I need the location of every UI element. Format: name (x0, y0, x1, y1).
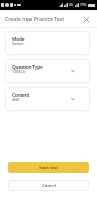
staticText: Start test (39, 164, 58, 170)
staticText: 100 MCQs (12, 69, 25, 74)
staticText: Create new Practice Test (5, 15, 65, 22)
staticText: All / All (12, 97, 19, 102)
button[interactable]: Mode (5, 31, 90, 55)
staticText: Question Type (12, 64, 43, 71)
staticText: 70% (80, 3, 87, 7)
staticText: Content (12, 92, 30, 99)
button[interactable]: Start test (8, 162, 89, 173)
button[interactable]: Question Type (5, 59, 90, 83)
staticText: Random (12, 41, 23, 46)
button[interactable]: Close (82, 15, 90, 23)
staticText: Mode (12, 36, 25, 43)
button[interactable]: Cancel (8, 180, 89, 191)
staticText: Cancel (42, 182, 56, 188)
button[interactable]: Content (5, 87, 90, 111)
staticText: 4G (69, 3, 74, 7)
